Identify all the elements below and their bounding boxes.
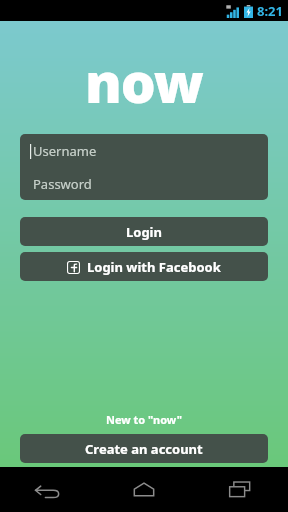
staticText: New to "now" [0, 412, 288, 427]
other: Facebook [67, 261, 80, 274]
staticText: now [85, 44, 203, 119]
button[interactable]: Create an account [20, 434, 268, 463]
button[interactable]: Username [20, 134, 268, 167]
staticText: Password [33, 175, 92, 193]
button[interactable]: Home [108, 467, 180, 512]
button[interactable]: Password [20, 167, 268, 200]
staticText: Login [126, 223, 162, 241]
button[interactable]: Back [12, 467, 84, 512]
staticText: Create an account [85, 440, 203, 458]
button[interactable]: Facebook [20, 252, 268, 281]
staticText: Username [33, 142, 97, 160]
staticText: Login with Facebook [87, 258, 221, 276]
button[interactable]: Recent apps [204, 467, 276, 512]
button[interactable]: Login [20, 217, 268, 246]
staticText: 8:21 [257, 2, 283, 20]
